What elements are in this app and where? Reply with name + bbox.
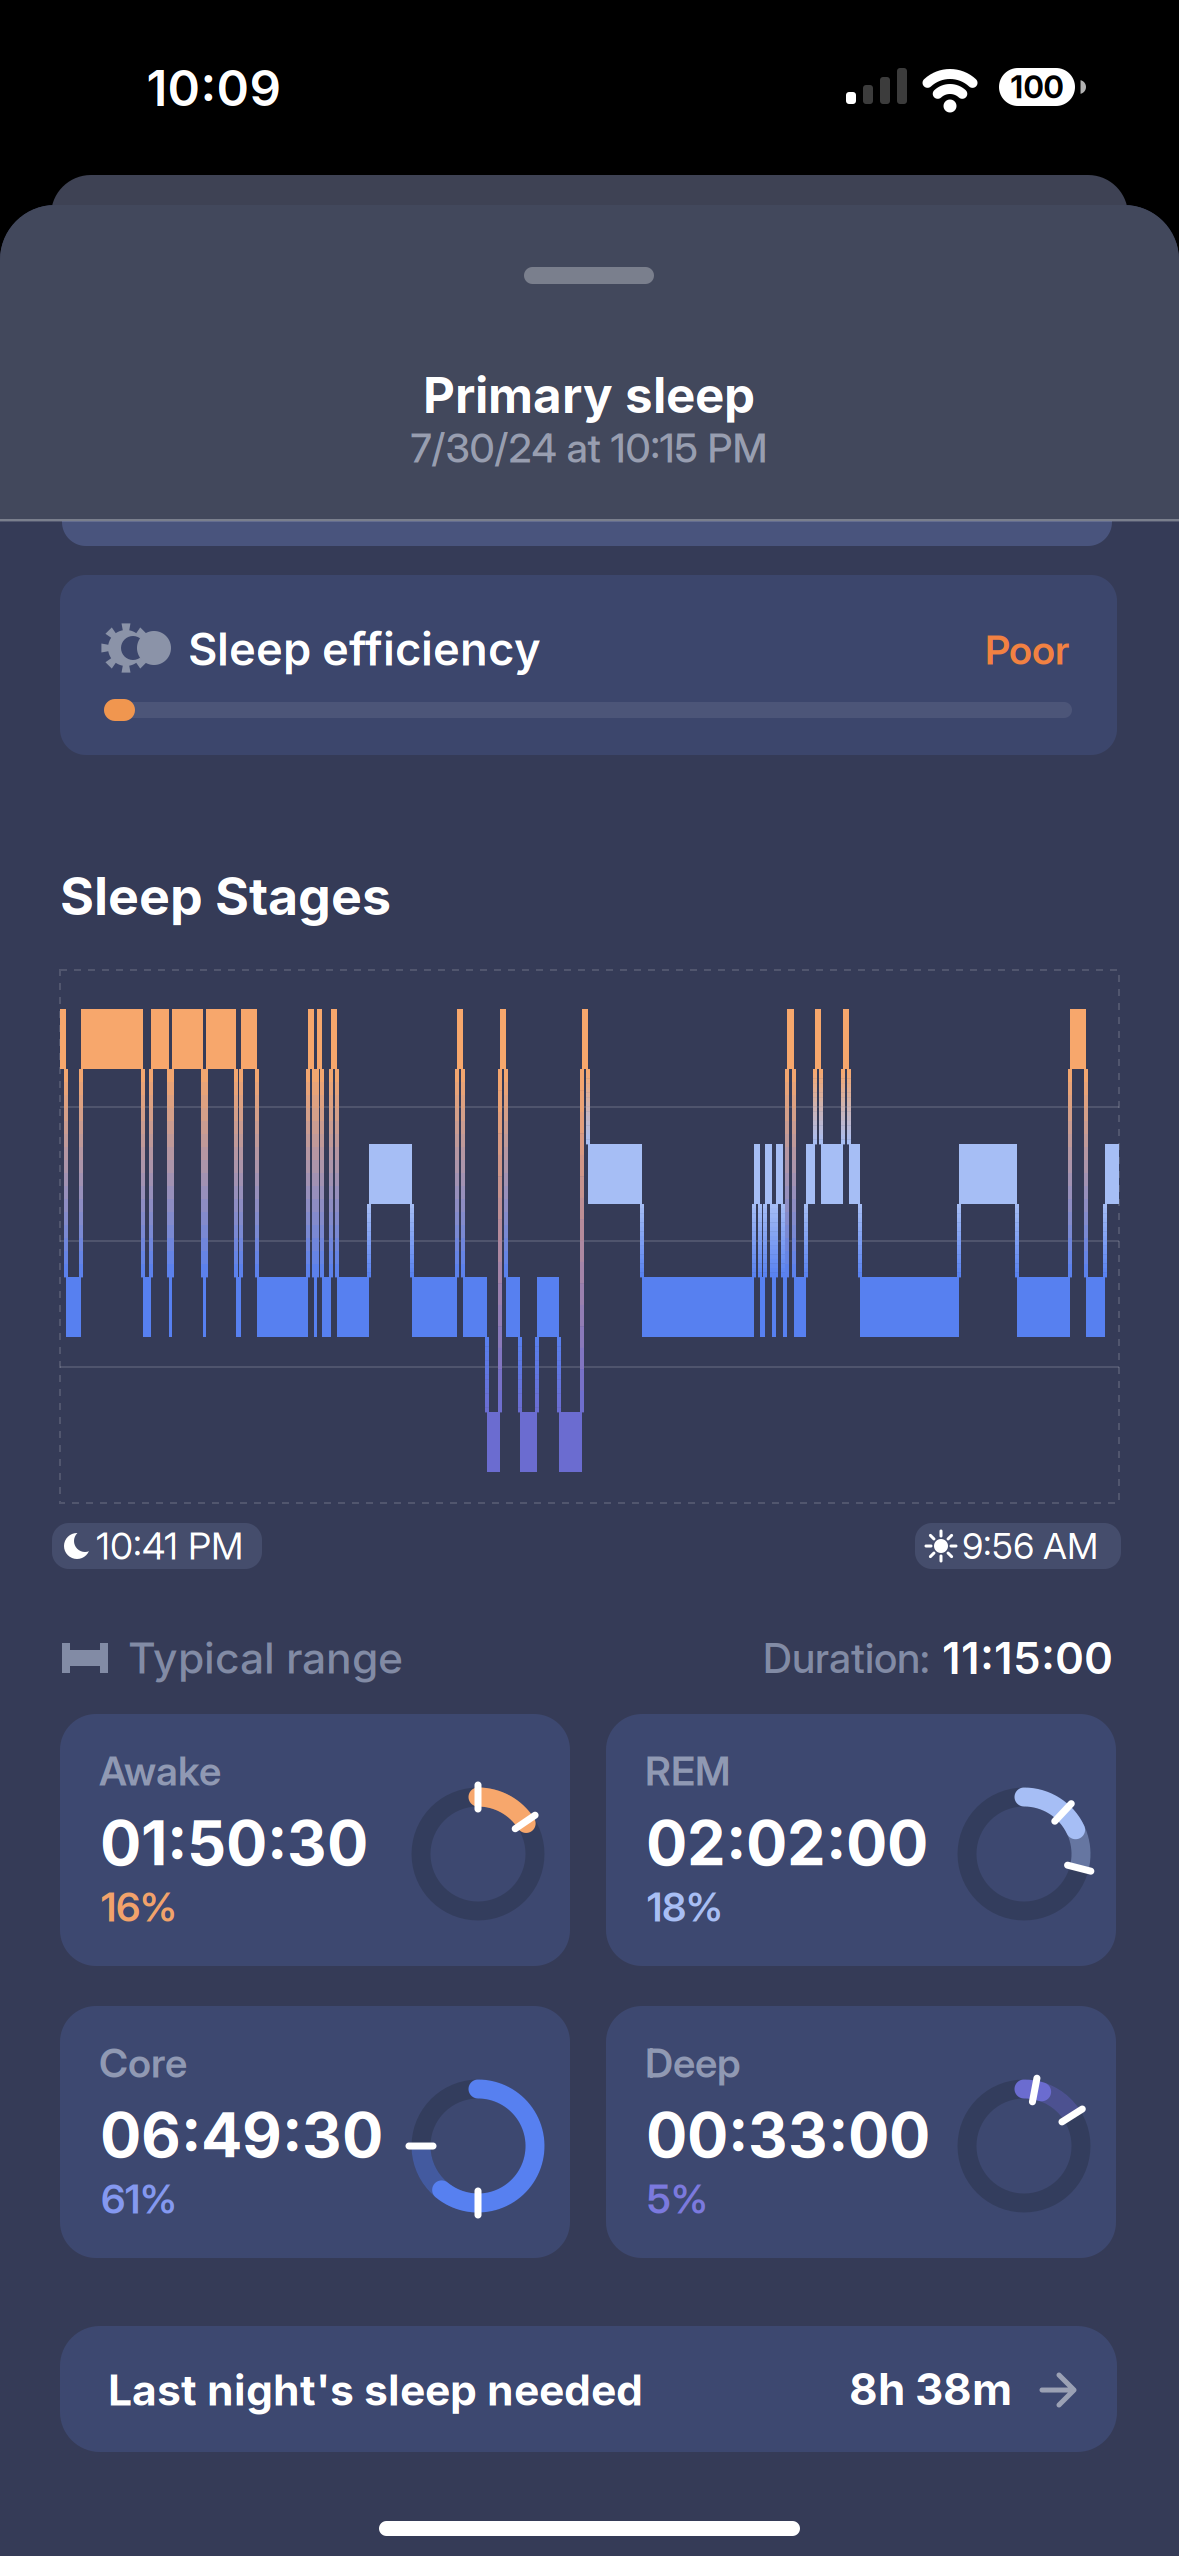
staticText: 5% (647, 2175, 708, 2223)
staticText: Core (99, 2039, 187, 2087)
staticText: 06:49:30 (100, 2099, 383, 2171)
staticText: 61% (101, 2175, 177, 2223)
staticText: 100 (1010, 69, 1063, 105)
staticText: 10:41 PM (96, 1524, 243, 1568)
staticText: Duration: (763, 1634, 930, 1682)
staticText: 10:09 (146, 59, 281, 117)
staticText: 8h 38m (849, 2363, 1012, 2415)
staticText: 7/30/24 at 10:15 PM (410, 424, 767, 472)
staticText: Deep (645, 2039, 741, 2087)
staticText: REM (645, 1747, 730, 1795)
staticText: Typical range (128, 1633, 403, 1683)
staticText: 01:50:30 (100, 1807, 368, 1879)
staticText: 00:33:00 (646, 2099, 930, 2171)
staticText: Sleep efficiency (188, 622, 541, 676)
staticText: 18% (647, 1883, 723, 1931)
staticText: Primary sleep (423, 366, 755, 424)
staticText: 16% (101, 1883, 177, 1931)
staticText: Awake (99, 1747, 221, 1795)
staticText: Last night's sleep needed (108, 2365, 643, 2415)
staticText: Poor (985, 626, 1069, 674)
staticText: 02:02:00 (646, 1807, 928, 1879)
staticText: 11:15:00 (942, 1632, 1113, 1684)
staticText: 9:56 AM (962, 1525, 1098, 1567)
staticText: Sleep Stages (60, 865, 391, 927)
button[interactable]: Last night's sleep needed (60, 2326, 1117, 2452)
